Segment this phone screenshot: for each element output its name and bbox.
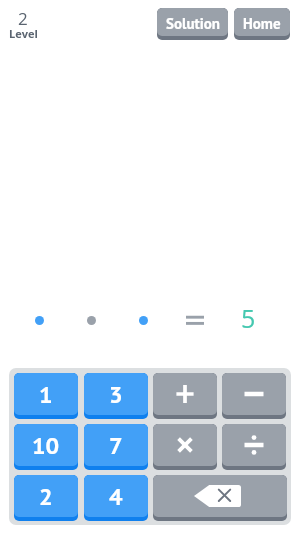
staticText: 3 xyxy=(109,379,123,410)
button[interactable]: 10 xyxy=(14,424,78,470)
button[interactable]: Solution xyxy=(157,8,228,40)
staticText: 10 xyxy=(32,430,60,461)
button[interactable]: 1 xyxy=(14,373,78,419)
button[interactable]: 7 xyxy=(84,424,148,470)
button[interactable]: operand slot xyxy=(139,316,148,325)
staticText: 7 xyxy=(109,430,123,461)
button[interactable]: plus xyxy=(153,373,217,419)
button[interactable]: 4 xyxy=(84,475,148,521)
staticText: 2 xyxy=(18,7,28,30)
staticText: 2 xyxy=(39,481,53,512)
staticText: Level xyxy=(9,26,38,41)
staticText: Solution xyxy=(166,14,220,33)
staticText: Home xyxy=(243,14,281,33)
button[interactable]: times xyxy=(153,424,217,470)
button[interactable]: Home xyxy=(234,8,290,40)
staticText: 1 xyxy=(39,379,53,410)
button[interactable]: 3 xyxy=(84,373,148,419)
staticText: 5 xyxy=(241,301,256,335)
button[interactable]: 2 xyxy=(14,475,78,521)
button[interactable]: divide xyxy=(222,424,286,470)
button[interactable]: Backspace xyxy=(153,475,287,521)
button[interactable]: operand slot xyxy=(87,316,96,325)
staticText: 4 xyxy=(109,481,123,512)
button[interactable]: minus xyxy=(222,373,286,419)
button[interactable]: operand slot xyxy=(35,316,44,325)
